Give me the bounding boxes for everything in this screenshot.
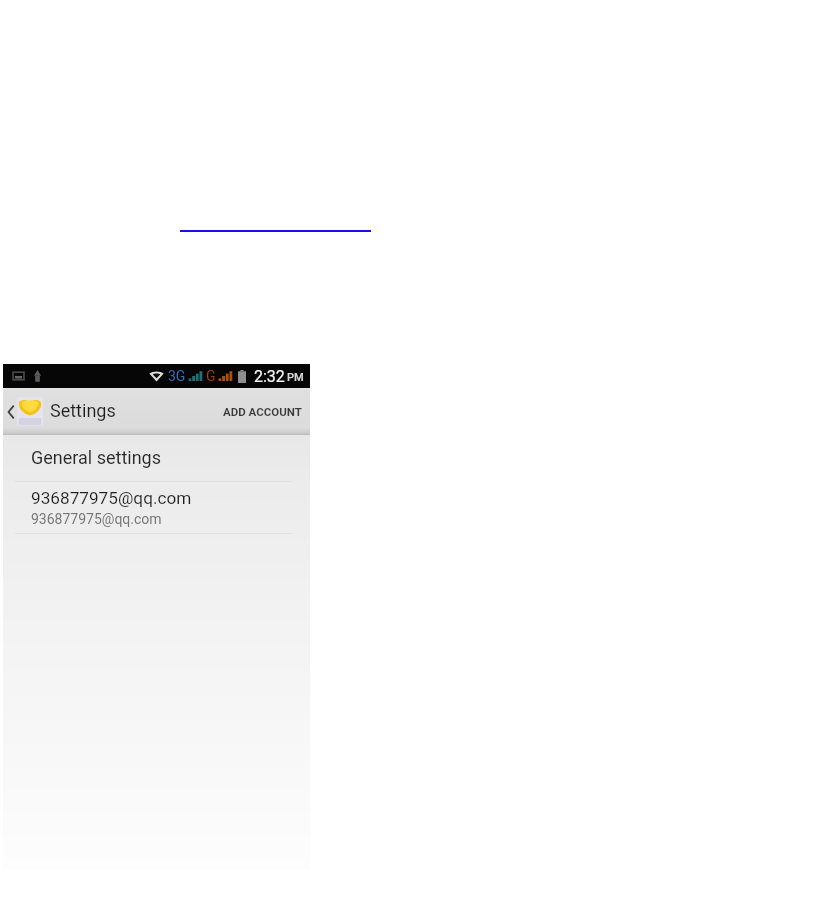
staticText: Settings (50, 400, 116, 421)
staticText: 3G (168, 368, 186, 384)
staticText: G (206, 368, 216, 384)
staticText: General settings (31, 447, 161, 468)
button[interactable]: ADD ACCOUNT (215, 405, 310, 418)
staticText: ADD ACCOUNT (223, 405, 302, 418)
staticText: 936877975@qq.com (31, 511, 162, 527)
staticText: 936877975@qq.com (31, 488, 192, 508)
staticText: PM (287, 371, 304, 384)
other: Back (7, 405, 14, 419)
button[interactable]: Back (3, 395, 44, 428)
button[interactable]: General settings (3, 435, 310, 481)
staticText: 2:32 (254, 367, 285, 386)
button[interactable]: 936877975@qq.com (3, 482, 310, 533)
